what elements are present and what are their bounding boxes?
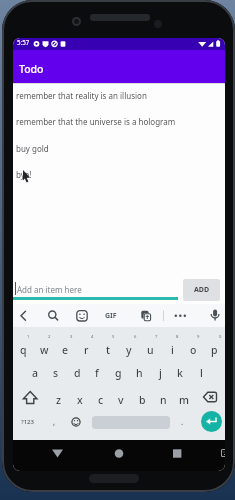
button[interactable] <box>162 442 192 469</box>
staticText: . <box>181 416 184 427</box>
staticText: Add an item here <box>17 284 82 295</box>
button[interactable]: Add an item here <box>13 277 179 304</box>
staticText: 8 <box>176 334 179 340</box>
staticText: l <box>200 366 203 380</box>
staticText: 2 <box>48 334 51 340</box>
staticText: , <box>53 416 56 427</box>
staticText: 3 <box>70 334 73 340</box>
button[interactable] <box>104 442 134 469</box>
staticText: z <box>56 393 62 407</box>
staticText: w <box>40 343 49 357</box>
button[interactable]: remember that reality is an illusion <box>13 84 225 106</box>
staticText: m <box>179 393 189 407</box>
staticText: 1 <box>27 334 30 340</box>
staticText: remember that reality is an illusion <box>16 90 147 101</box>
staticText: u <box>147 343 154 357</box>
staticText: s <box>53 366 59 380</box>
staticText: remember that the universe is a hologram <box>16 116 176 127</box>
staticText: x <box>77 393 83 407</box>
staticText: 5:57 <box>17 38 30 46</box>
button[interactable]: buy gold <box>13 137 225 159</box>
staticText: 0 <box>219 334 222 340</box>
staticText: a <box>32 366 39 380</box>
staticText: e <box>62 343 69 357</box>
staticText: r <box>84 343 89 357</box>
button[interactable] <box>43 442 73 469</box>
staticText: buy gold <box>16 143 49 154</box>
staticText: k <box>177 366 183 380</box>
staticText: g <box>115 366 122 380</box>
staticText: i <box>171 343 174 357</box>
staticText: h <box>136 366 143 380</box>
staticText: ADD <box>194 285 210 295</box>
staticText: f <box>95 366 99 380</box>
button[interactable]: bye! <box>13 163 225 185</box>
staticText: n <box>160 393 167 407</box>
staticText: t <box>106 343 111 357</box>
staticText: d <box>74 366 81 380</box>
button[interactable] <box>201 411 222 432</box>
staticText: 4 <box>91 334 94 340</box>
button[interactable]: Todo <box>13 50 225 83</box>
staticText: j <box>159 366 162 380</box>
staticText: y <box>126 343 132 357</box>
staticText: c <box>98 393 104 407</box>
button[interactable]: ADD <box>183 279 220 301</box>
staticText: GIF <box>105 311 117 321</box>
staticText: 9 <box>197 334 200 340</box>
staticText: o <box>190 343 197 357</box>
staticText: ?123 <box>21 418 34 426</box>
staticText: 7 <box>155 334 158 340</box>
staticText: 6 <box>134 334 137 340</box>
staticText: Todo <box>19 62 44 76</box>
staticText: b <box>139 393 146 407</box>
staticText: v <box>118 393 124 407</box>
button[interactable]: remember that the universe is a hologram <box>13 110 225 132</box>
staticText: p <box>211 343 218 357</box>
staticText: bye! <box>16 169 32 180</box>
staticText: 5 <box>112 334 115 340</box>
staticText: q <box>20 343 27 357</box>
